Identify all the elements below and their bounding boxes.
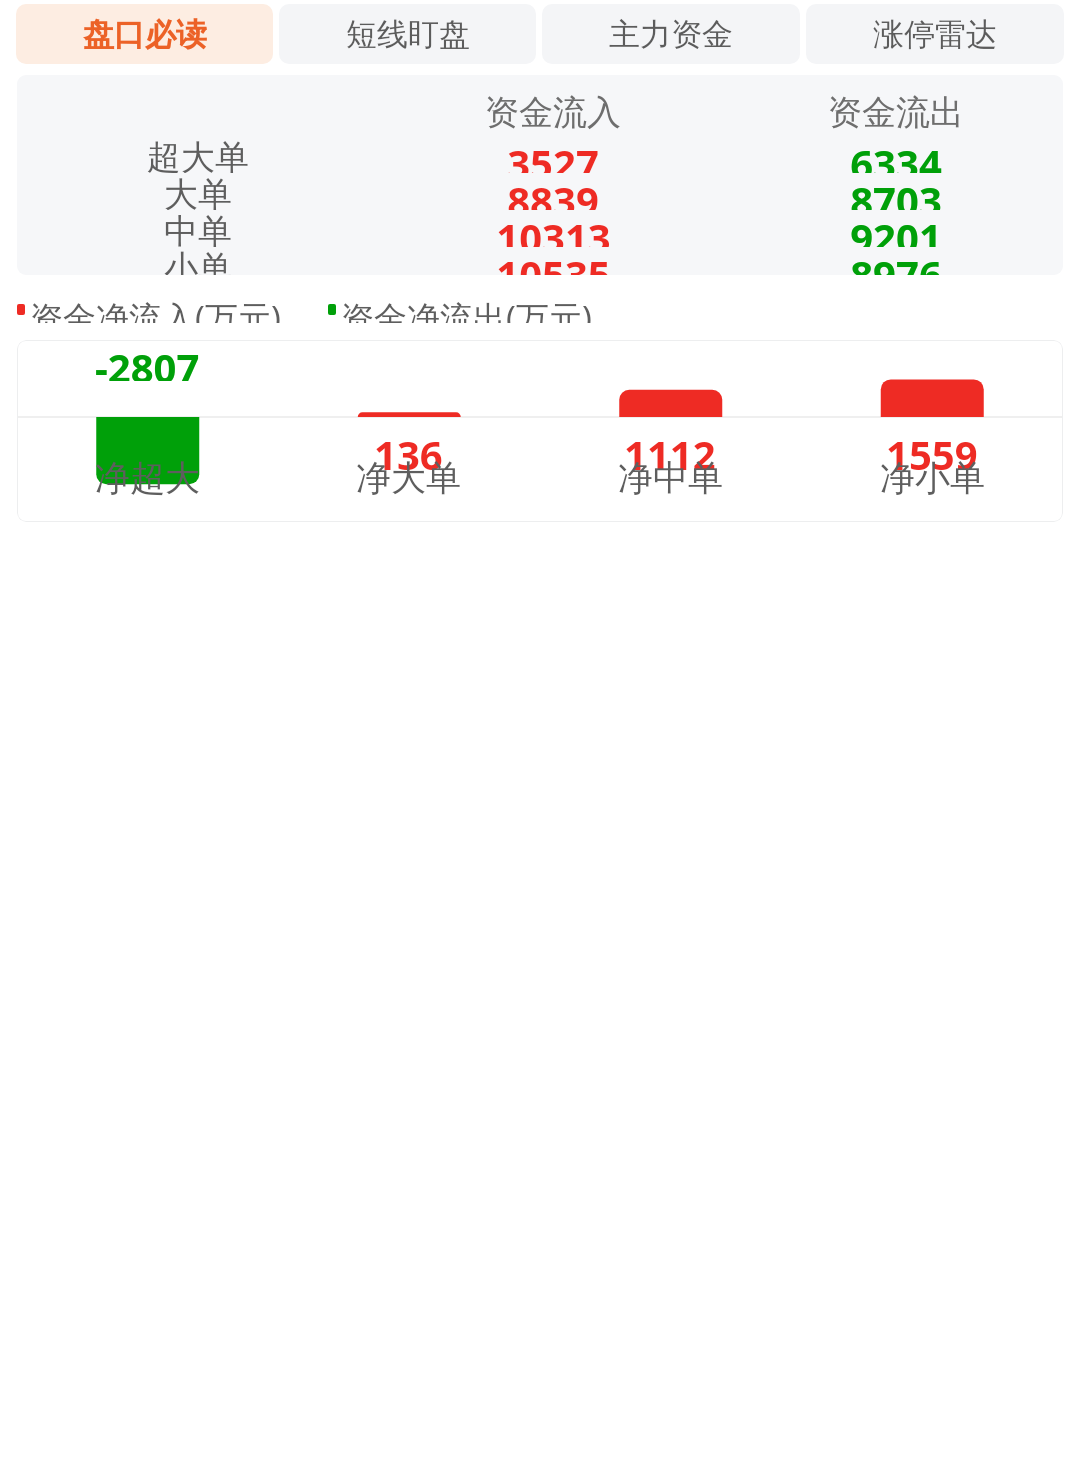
staticText: 10535 [496,247,611,275]
staticText: 净小单 [880,456,985,500]
staticText: 资金净流出(万元) [341,295,592,323]
button[interactable]: 资金净流入(万元) [17,295,281,323]
button[interactable]: 涨停雷达 [806,4,1064,64]
staticText: 1559 [886,427,978,481]
staticText: 短线盯盘 [346,15,470,54]
button[interactable]: 资金流入 [17,75,1063,275]
button[interactable]: 盘口必读 [16,4,273,64]
staticText: 盘口必读 [83,15,207,54]
button[interactable]: 资金净流出(万元) [328,295,592,323]
staticText: 净超大 [95,456,200,500]
staticText: 净大单 [356,456,461,500]
staticText: 资金净流入(万元) [30,295,281,323]
staticText: 大单 [164,173,232,210]
staticText: -2807 [95,340,200,381]
staticText: 主力资金 [609,15,733,54]
staticText: 8976 [850,247,942,275]
staticText: 中单 [164,210,232,247]
staticText: 超大单 [147,136,249,173]
button[interactable]: -2807 [17,340,1063,522]
staticText: 136 [374,427,443,481]
staticText: 涨停雷达 [873,15,997,54]
staticText: 8703 [850,173,942,210]
staticText: 1112 [624,427,716,481]
staticText: 8839 [507,173,599,210]
staticText: 净中单 [618,456,723,500]
staticText: 10313 [496,210,611,247]
staticText: 9201 [850,210,942,247]
staticText: 资金流出 [828,91,964,134]
staticText: 小单 [164,247,232,275]
staticText: 3527 [507,136,599,173]
button[interactable]: 短线盯盘 [279,4,536,64]
staticText: 资金流入 [485,91,621,134]
staticText: 6334 [850,136,942,173]
button[interactable]: 主力资金 [542,4,800,64]
